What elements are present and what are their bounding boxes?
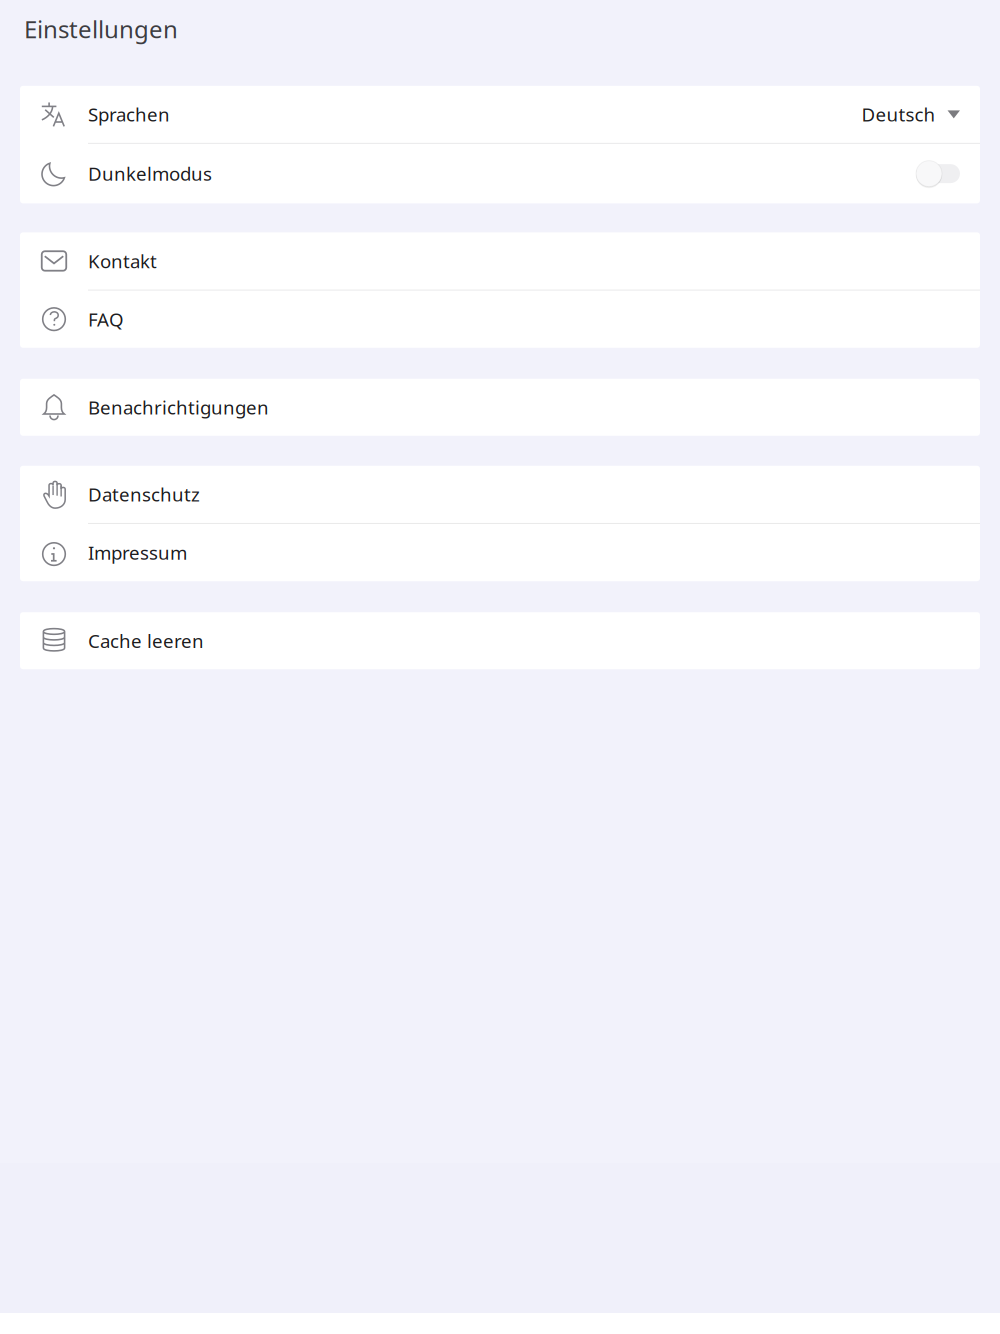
staticText: Deutsch (861, 102, 935, 127)
staticText: Sprachen (88, 102, 170, 127)
staticText: Datenschutz (88, 482, 200, 507)
staticText: Cache leeren (88, 628, 204, 653)
staticText: Dunkelmodus (88, 161, 212, 186)
staticText: Benachrichtigungen (88, 395, 269, 420)
button[interactable]: Kontakt (20, 232, 980, 290)
staticText: Kontakt (88, 249, 157, 273)
button[interactable]: Cache leeren (20, 612, 980, 669)
button[interactable]: Benachrichtigungen (20, 379, 980, 436)
button[interactable]: Deutsch (861, 102, 960, 127)
button[interactable]: Impressum (20, 524, 980, 581)
staticText: Impressum (88, 540, 187, 565)
staticText: FAQ (88, 307, 124, 332)
button[interactable]: FAQ (20, 291, 980, 348)
button[interactable]: Datenschutz (20, 466, 980, 523)
button[interactable]: Sprachen (20, 86, 980, 143)
button[interactable]: Dunkelmodus ausgeschaltet (916, 160, 960, 188)
staticText: Einstellungen (24, 13, 178, 45)
button[interactable]: Dunkelmodus (20, 144, 980, 203)
